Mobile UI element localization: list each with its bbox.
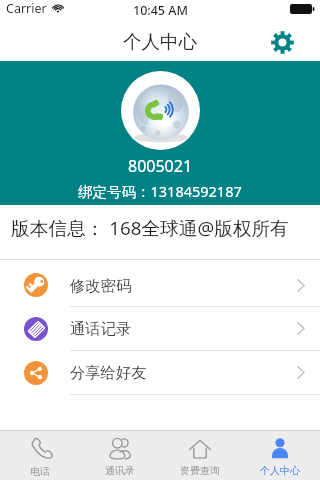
staticText: Carrier — [6, 0, 47, 17]
staticText: 资费查询 — [180, 464, 220, 477]
button[interactable]: 资费查询 — [160, 431, 240, 480]
staticText: 版本信息： 168全球通@版权所有 — [11, 215, 289, 241]
staticText: 个人中心 — [260, 464, 300, 477]
button[interactable]: Settings — [266, 26, 298, 58]
staticText: 电话 — [30, 465, 50, 478]
staticText: 分享给好友 — [70, 363, 147, 382]
button[interactable]: 个人中心 — [240, 431, 320, 480]
staticText: 个人中心 — [123, 30, 197, 53]
button[interactable]: 修改密码 — [0, 260, 320, 306]
staticText: 10:45 AM — [133, 2, 188, 19]
staticText: 8005021 — [128, 155, 193, 177]
staticText: 通讯录 — [105, 464, 135, 477]
staticText: 通话记录 — [70, 319, 132, 338]
button[interactable]: 通讯录 — [80, 431, 160, 480]
staticText: 修改密码 — [70, 276, 132, 295]
button[interactable]: 电话 — [0, 431, 80, 480]
button[interactable]: 分享给好友 — [0, 351, 320, 394]
button[interactable]: 通话记录 — [0, 307, 320, 350]
staticText: 绑定号码：13184592187 — [78, 181, 242, 201]
